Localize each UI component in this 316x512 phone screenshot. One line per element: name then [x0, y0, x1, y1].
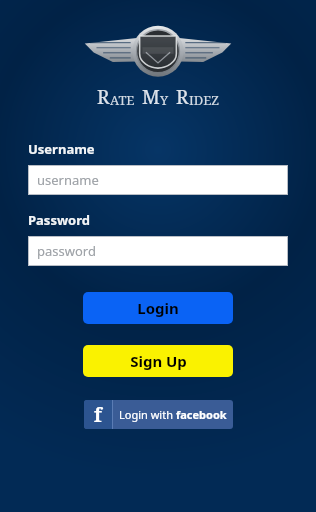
- staticText: facebook: [176, 407, 227, 422]
- staticText: R: [176, 84, 189, 110]
- button[interactable]: Sign Up: [83, 345, 233, 377]
- staticText: Sign Up: [130, 351, 187, 371]
- staticText: Password: [28, 211, 90, 229]
- staticText: IDEZ: [189, 91, 220, 109]
- staticText: ATE: [110, 91, 135, 109]
- staticText: Login: [137, 298, 179, 318]
- staticText: R: [97, 84, 110, 110]
- button[interactable]: password: [28, 236, 288, 266]
- staticText: f: [94, 402, 102, 428]
- staticText: username: [37, 171, 99, 189]
- staticText: Y: [160, 91, 169, 109]
- staticText: password: [37, 242, 96, 260]
- button[interactable]: username: [28, 165, 288, 195]
- staticText: Username: [28, 140, 95, 158]
- button[interactable]: Login with Facebook: [84, 400, 233, 429]
- staticText: M: [142, 84, 160, 110]
- staticText: Login with: [119, 407, 176, 422]
- button[interactable]: Login: [83, 292, 233, 324]
